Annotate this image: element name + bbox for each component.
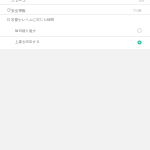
- staticText: 毎日繰り返す: [15, 29, 37, 33]
- staticText: 安全警報: [11, 8, 26, 13]
- button[interactable]: 安全警報: [0, 5, 150, 15]
- button[interactable]: 音量やレベルに応じた時間: [0, 15, 150, 25]
- staticText: 音量やレベルに応じた時間: [11, 18, 55, 22]
- button[interactable]: 毎日繰り返す: [0, 25, 150, 36]
- staticText: スヌーズ: [11, 0, 27, 2]
- staticText: 5分: [139, 0, 145, 2]
- staticText: 上書き設定する: [15, 40, 40, 44]
- button[interactable]: 上書き設定する: [0, 37, 150, 48]
- button[interactable]: スヌーズ: [0, 0, 150, 4]
- staticText: 11:08: [133, 8, 142, 12]
